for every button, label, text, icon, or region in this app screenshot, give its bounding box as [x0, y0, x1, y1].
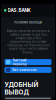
staticText: Без комиссии — [13, 68, 37, 72]
button[interactable]: Быстрый перевод — [4, 59, 51, 65]
staticText: ВЫВОД — [4, 88, 28, 96]
button[interactable]: Без комиссии — [4, 67, 51, 73]
staticText: УСЛОВИЯ ВЫВОДА — [14, 21, 42, 24]
staticText: УДОБНЫЙ — [4, 81, 38, 88]
staticText: DAS.BANK — [8, 8, 31, 13]
staticText: Быстрый перевод — [13, 58, 27, 66]
staticText: Вывод средств доступен в любое время сут… — [6, 29, 49, 54]
